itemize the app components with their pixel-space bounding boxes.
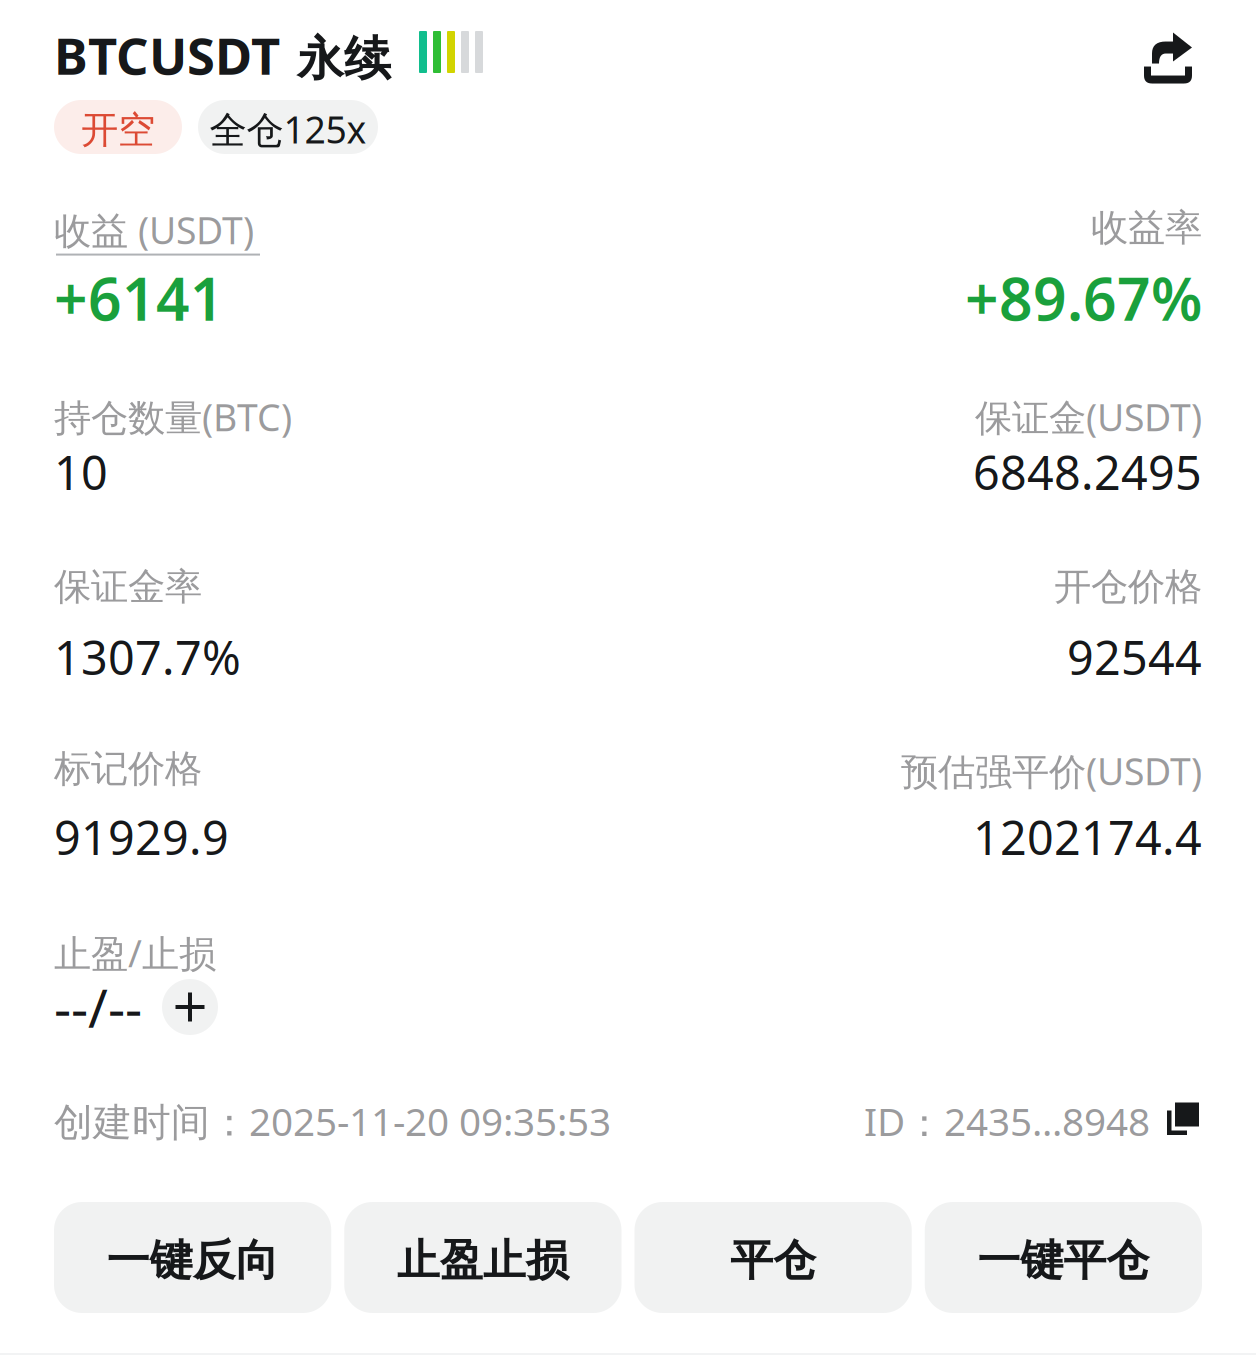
staticText: 1202174.4	[973, 806, 1202, 868]
staticText: +6141	[54, 259, 224, 337]
staticText: 6848.2495	[973, 441, 1202, 503]
staticText: BTCUSDT	[54, 21, 280, 89]
staticText: 持仓数量(BTC)	[54, 392, 292, 442]
staticText: 10	[54, 441, 108, 503]
staticText: 永续	[297, 30, 391, 88]
button[interactable]: Share	[1143, 27, 1202, 83]
staticText: 创建时间：2025-11-20 09:35:53	[54, 1095, 611, 1147]
staticText: 一键反向	[107, 1234, 279, 1287]
staticText: 全仓125x	[209, 104, 366, 154]
button[interactable]: 止盈止损	[344, 1202, 621, 1313]
staticText: 开仓价格	[1054, 564, 1202, 610]
staticText: 开空	[81, 107, 155, 153]
button[interactable]: Copy order ID	[864, 1095, 1202, 1147]
staticText: 标记价格	[54, 746, 202, 792]
staticText: ID：2435...8948	[864, 1095, 1150, 1147]
button[interactable]: 一键平仓	[925, 1202, 1202, 1313]
staticText: 保证金(USDT)	[975, 392, 1202, 442]
staticText: 平仓	[730, 1234, 816, 1287]
button[interactable]: 平仓	[634, 1202, 912, 1313]
staticText: 91929.9	[54, 806, 229, 868]
staticText: 收益 (USDT)	[54, 205, 254, 255]
staticText: 止盈/止损	[54, 928, 216, 978]
staticText: 预估强平价(USDT)	[901, 746, 1202, 796]
staticText: 收益率	[1091, 205, 1202, 251]
staticText: 一键平仓	[977, 1234, 1149, 1287]
staticText: 92544	[1067, 626, 1202, 688]
button[interactable]: 一键反向	[54, 1202, 331, 1313]
staticText: 1307.7%	[54, 626, 241, 688]
staticText: +89.67%	[965, 259, 1202, 337]
staticText: 保证金率	[54, 564, 202, 610]
staticText: 止盈止损	[397, 1234, 569, 1287]
button[interactable]: Add take-profit / stop-loss	[162, 978, 218, 1036]
staticText: --/--	[54, 972, 142, 1042]
